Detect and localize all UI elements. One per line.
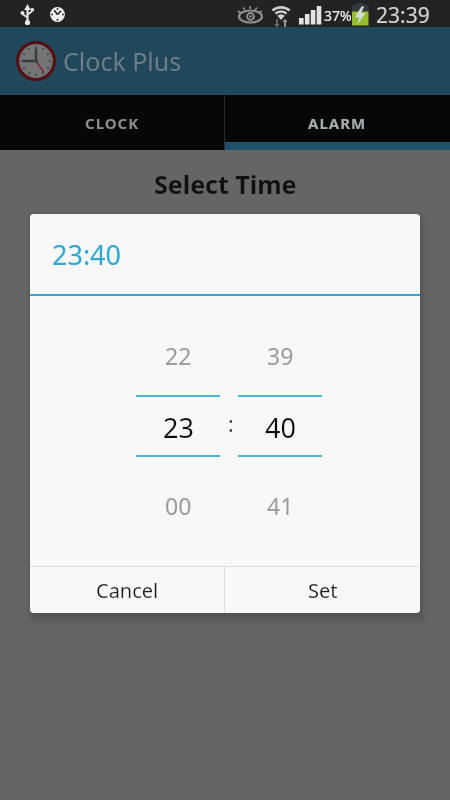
staticText: 40 bbox=[265, 409, 296, 446]
button[interactable]: CLOCK bbox=[0, 95, 224, 150]
staticText: Select Time bbox=[154, 167, 297, 201]
staticText: Clock Plus bbox=[63, 44, 182, 78]
staticText: 23:40 bbox=[52, 236, 122, 273]
staticText: 41 bbox=[267, 490, 294, 521]
button[interactable]: ALARM bbox=[225, 95, 450, 150]
button[interactable]: Cancel bbox=[30, 567, 224, 613]
staticText: 00 bbox=[165, 490, 192, 521]
staticText: 37% bbox=[324, 6, 352, 25]
staticText: ALARM bbox=[308, 113, 367, 133]
staticText: Cancel bbox=[96, 577, 159, 604]
staticText: 23:39 bbox=[376, 1, 430, 28]
staticText: 39 bbox=[267, 340, 294, 371]
staticText: : bbox=[228, 410, 234, 439]
staticText: 22 bbox=[165, 340, 192, 371]
staticText: 23 bbox=[163, 409, 194, 446]
staticText: CLOCK bbox=[85, 113, 140, 133]
button[interactable]: Set bbox=[225, 567, 420, 613]
staticText: Set bbox=[308, 577, 338, 604]
